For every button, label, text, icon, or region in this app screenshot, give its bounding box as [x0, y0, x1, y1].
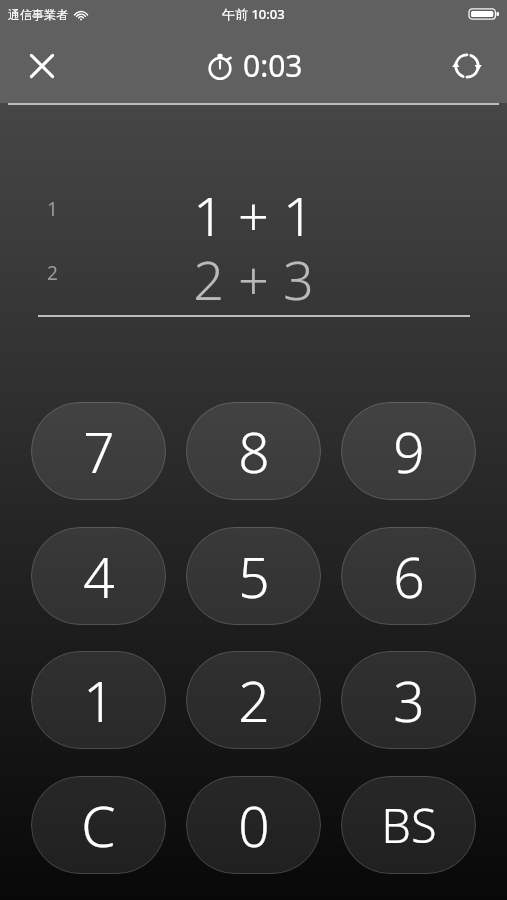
button[interactable]: C [31, 776, 166, 874]
button[interactable]: 1 [31, 651, 166, 749]
staticText: C [81, 788, 116, 863]
staticText: 午前 10:03 [222, 5, 285, 23]
staticText: 1 [47, 196, 58, 222]
staticText: BS [381, 793, 437, 857]
button[interactable]: Close [14, 38, 70, 94]
staticText: 2 [47, 260, 58, 286]
button[interactable]: 4 [31, 527, 166, 625]
staticText: 通信事業者 [8, 7, 68, 22]
staticText: 6 [393, 539, 425, 614]
staticText: 2 + 3 [193, 242, 314, 304]
button[interactable]: 0 [186, 776, 321, 874]
staticText: 8 [238, 414, 270, 489]
button[interactable]: 9 [341, 402, 476, 500]
staticText: 7 [83, 414, 115, 489]
staticText: 0 [238, 788, 270, 863]
button[interactable]: Refresh [439, 38, 495, 94]
staticText: 1 + 1 [193, 178, 314, 240]
button[interactable]: 5 [186, 527, 321, 625]
staticText: 4 [83, 539, 115, 614]
button[interactable]: 8 [186, 402, 321, 500]
button[interactable]: 6 [341, 527, 476, 625]
staticText: 0:03 [243, 45, 303, 86]
staticText: 5 [238, 539, 270, 614]
button[interactable]: BS [341, 776, 476, 874]
staticText: 1 [83, 663, 115, 738]
staticText: 2 [238, 663, 270, 738]
button[interactable]: 2 [186, 651, 321, 749]
staticText: 3 [393, 663, 425, 738]
staticText: 9 [393, 414, 425, 489]
button[interactable]: 3 [341, 651, 476, 749]
button[interactable]: 7 [31, 402, 166, 500]
